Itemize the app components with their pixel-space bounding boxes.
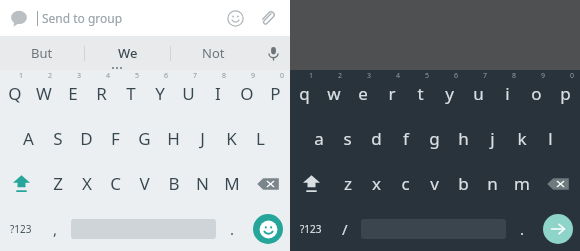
staticText: Z [53, 172, 63, 195]
button[interactable]: N [188, 161, 217, 206]
button[interactable]: Shift [0, 161, 43, 206]
button[interactable]: d [362, 116, 391, 161]
button[interactable]: s [333, 116, 362, 161]
button[interactable]: m [507, 161, 536, 206]
staticText: x [372, 172, 381, 195]
staticText: 7 [483, 71, 488, 81]
staticText: ?123 [10, 222, 32, 236]
button[interactable]: r [377, 70, 406, 116]
button[interactable]: h [449, 116, 478, 161]
staticText: o [531, 82, 542, 105]
button[interactable]: i [493, 70, 522, 116]
button[interactable]: F [101, 116, 130, 161]
button[interactable]: T [116, 70, 145, 116]
button[interactable]: x [362, 161, 391, 206]
button[interactable]: e [348, 70, 377, 116]
staticText: h [458, 127, 469, 150]
button[interactable]: E [58, 70, 87, 116]
button[interactable]: f [391, 116, 420, 161]
button[interactable]: Attach [254, 5, 280, 31]
button[interactable]: z [333, 161, 362, 206]
button[interactable]: C [101, 161, 130, 206]
button[interactable]: Shift [290, 161, 333, 206]
button[interactable]: l [536, 116, 565, 161]
button[interactable]: R [87, 70, 116, 116]
button[interactable]: t [406, 70, 435, 116]
button[interactable]: w [319, 70, 348, 116]
button[interactable]: Emoji [222, 5, 248, 31]
button[interactable]: We [85, 36, 170, 70]
button[interactable]: But [0, 36, 84, 70]
button[interactable]: k [507, 116, 536, 161]
staticText: K [226, 127, 237, 150]
button[interactable]: Emoji [246, 206, 290, 251]
staticText: C [110, 172, 121, 195]
button[interactable]: D [72, 116, 101, 161]
staticText: 0 [280, 71, 285, 81]
button[interactable]: Space [359, 206, 508, 251]
button[interactable]: Voice input [256, 36, 290, 70]
staticText: Y [155, 82, 165, 105]
button[interactable]: Backspace [246, 161, 290, 206]
button[interactable]: Backspace [536, 161, 580, 206]
button[interactable]: o [522, 70, 551, 116]
button[interactable]: X [72, 161, 101, 206]
staticText: m [514, 172, 530, 195]
button[interactable]: P [261, 70, 290, 116]
staticText: N [196, 172, 209, 195]
button[interactable]: W [29, 70, 58, 116]
button[interactable]: u [464, 70, 493, 116]
button[interactable]: b [449, 161, 478, 206]
staticText: j [490, 127, 495, 150]
button[interactable]: J [188, 116, 217, 161]
button[interactable]: O [232, 70, 261, 116]
staticText: 3 [77, 71, 82, 81]
button[interactable]: g [420, 116, 449, 161]
button[interactable]: p [551, 70, 580, 116]
staticText: w [327, 82, 341, 105]
button[interactable]: I [203, 70, 232, 116]
staticText: X [82, 172, 92, 195]
button[interactable]: Not [171, 36, 256, 70]
button[interactable]: q [290, 70, 319, 116]
button[interactable]: . [508, 206, 536, 251]
button[interactable]: Send [536, 206, 580, 251]
button[interactable]: A [14, 116, 43, 161]
staticText: 7 [193, 71, 198, 81]
staticText: e [358, 82, 368, 105]
staticText: 4 [106, 71, 111, 81]
button[interactable]: , [41, 206, 69, 251]
button[interactable]: n [478, 161, 507, 206]
button[interactable]: V [130, 161, 159, 206]
button[interactable]: Q [0, 70, 29, 116]
button[interactable]: Y [145, 70, 174, 116]
button[interactable]: v [420, 161, 449, 206]
button[interactable]: a [304, 116, 333, 161]
staticText: a [314, 127, 324, 150]
button[interactable]: ?123 [290, 206, 331, 251]
button[interactable]: Z [43, 161, 72, 206]
button[interactable]: y [435, 70, 464, 116]
staticText: T [126, 82, 136, 105]
button[interactable]: / [331, 206, 359, 251]
button[interactable]: Send to group [0, 0, 290, 36]
button[interactable]: . [218, 206, 246, 251]
staticText: g [429, 127, 440, 150]
button[interactable]: c [391, 161, 420, 206]
button[interactable]: S [43, 116, 72, 161]
button[interactable]: G [130, 116, 159, 161]
staticText: d [371, 127, 382, 150]
button[interactable]: M [217, 161, 246, 206]
button[interactable]: j [478, 116, 507, 161]
button[interactable]: Space [69, 206, 218, 251]
staticText: M [224, 172, 240, 195]
button[interactable]: U [174, 70, 203, 116]
button[interactable]: B [159, 161, 188, 206]
button[interactable]: K [217, 116, 246, 161]
button[interactable]: L [246, 116, 275, 161]
button[interactable]: ?123 [0, 206, 41, 251]
button[interactable]: H [159, 116, 188, 161]
staticText: R [96, 82, 107, 105]
staticText: B [168, 172, 180, 195]
staticText: 5 [135, 71, 140, 81]
